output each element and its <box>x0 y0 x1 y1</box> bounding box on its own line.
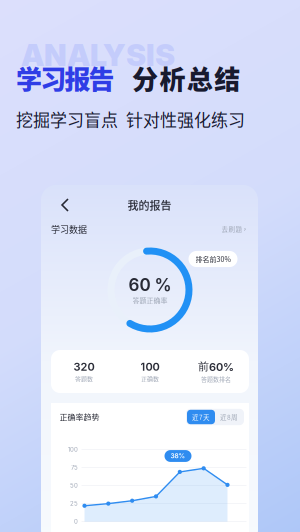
staticText: 38% <box>170 452 185 460</box>
staticText: 100 <box>68 446 78 453</box>
staticText: 总 <box>187 59 213 97</box>
staticText: 前60% <box>198 360 234 374</box>
staticText: 告 <box>89 59 115 97</box>
staticText: 析 <box>159 59 185 97</box>
button[interactable]: 近8周 <box>215 410 243 424</box>
staticText: 报 <box>64 59 90 97</box>
staticText: 320 <box>73 360 94 373</box>
button[interactable]: 去刷题 <box>221 224 246 234</box>
staticText: 去刷题 <box>221 224 242 234</box>
staticText: 答题数排名 <box>201 375 231 383</box>
button[interactable]: Back <box>54 194 76 216</box>
staticText: 挖掘学习盲点 针对性强化练习 <box>16 107 245 131</box>
staticText: 近8周 <box>220 412 238 422</box>
staticText: 分 <box>132 59 158 97</box>
staticText: 100 <box>140 360 159 373</box>
staticText: 0 <box>74 518 78 525</box>
staticText: 近7天 <box>192 412 210 422</box>
staticText: 排名前30% <box>195 254 230 264</box>
staticText: › <box>243 225 246 233</box>
staticText: 正确数 <box>141 374 159 383</box>
staticText: 75 <box>71 464 78 471</box>
button[interactable]: 近7天 <box>187 410 215 424</box>
staticText: 我的报告 <box>127 197 171 213</box>
staticText: 答题正确率 <box>132 295 167 305</box>
staticText: 结 <box>214 59 240 97</box>
staticText: 正确率趋势 <box>59 411 99 423</box>
staticText: 学 <box>16 59 42 97</box>
staticText: 50 <box>70 482 78 489</box>
staticText: 答题数 <box>75 374 93 383</box>
staticText: 60 % <box>128 275 171 295</box>
staticText: ANALYSIS <box>21 37 175 73</box>
staticText: 学习数据 <box>51 222 87 235</box>
staticText: 25 <box>70 500 78 507</box>
staticText: 习 <box>40 59 66 97</box>
